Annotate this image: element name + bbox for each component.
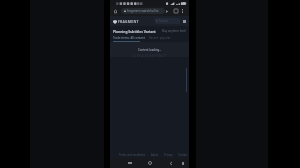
button[interactable]: FRAGMENT: [113, 19, 139, 24]
staticText: Trade items: All content: [113, 36, 145, 40]
button[interactable]: Recents: [124, 158, 136, 168]
staticText: Planning Subtitles Variant: [113, 29, 156, 33]
button[interactable]: Contact: [178, 153, 188, 157]
staticText: Contact: [178, 153, 188, 157]
staticText: Content loading...: [138, 48, 162, 52]
staticText: FRAGMENT: [118, 19, 139, 24]
button[interactable]: Tabs: [172, 6, 179, 16]
staticText: Search Fragment: [159, 19, 179, 23]
button[interactable]: Keyboard: [179, 158, 187, 168]
button[interactable]: Share: [164, 6, 170, 16]
button[interactable]: fragment.watch/u/list: [121, 8, 165, 14]
staticText: Terms and conditions: [119, 153, 146, 157]
button[interactable]: Home: [144, 158, 156, 168]
button[interactable]: Home: [112, 6, 119, 16]
button[interactable]: Menu: [182, 19, 187, 24]
button[interactable]: Back: [166, 158, 176, 168]
staticText: Privacy: [164, 153, 173, 157]
button[interactable]: Search Fragment: [155, 18, 180, 24]
button[interactable]: Recent: popular: [149, 36, 171, 40]
button[interactable]: Terms and conditions: [119, 153, 146, 157]
staticText: Buy anytime level: [162, 29, 186, 33]
staticText: About: [151, 153, 159, 157]
staticText: FRAGMENT: [133, 52, 167, 57]
button[interactable]: About: [151, 153, 159, 157]
button[interactable]: Privacy: [164, 153, 173, 157]
button[interactable]: Trade items: All content: [113, 36, 145, 40]
button[interactable]: More options: [180, 6, 185, 16]
staticText: fragment.watch/u/list: [127, 9, 159, 13]
staticText: Recent: popular: [149, 36, 171, 40]
